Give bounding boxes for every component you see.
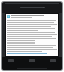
button[interactable] [7, 53, 57, 54]
other: App icon [7, 15, 10, 18]
button[interactable]: App icon [7, 15, 57, 19]
